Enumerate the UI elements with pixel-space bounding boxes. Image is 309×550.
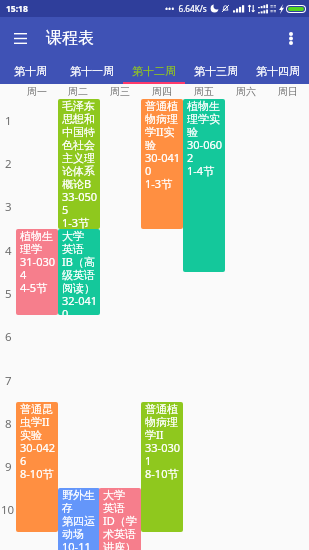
button[interactable]: 普通昆 虫学II 实验 30-042 6 8-10节 <box>16 402 58 532</box>
staticText: 大学 英语 ID（学 术英语 讲座） 32-041 0 10-11节 <box>103 488 141 550</box>
staticText: 第十二周 <box>132 64 176 78</box>
button[interactable]: 大学 英语 IB（高 级英语 阅读） 32-041 0 4-5节 <box>58 229 100 315</box>
staticText: 周四 <box>152 85 172 98</box>
staticText: 周二 <box>68 85 88 98</box>
staticText: 5 <box>5 286 12 302</box>
staticText: 植物生 理学实 验 30-060 2 1-4节 <box>187 99 223 178</box>
button[interactable]: Menu <box>0 18 40 58</box>
staticText: 4 <box>5 243 12 259</box>
button[interactable]: 毛泽东 思想和 中国特 色社会 主义理 论体系 概论B 33-050 5 1-3… <box>58 99 100 229</box>
staticText: 第十四周 <box>256 64 300 78</box>
staticText: 周一 <box>27 85 47 98</box>
staticText: 2 <box>5 156 12 172</box>
staticText: 普通昆 虫学II 实验 30-042 6 8-10节 <box>20 402 56 481</box>
staticText: ••• 6.64K/s <box>165 3 207 14</box>
staticText: 10 <box>1 502 15 518</box>
staticText: 大学 英语 IB（高 级英语 阅读） 32-041 0 4-5节 <box>62 229 98 315</box>
staticText: 周五 <box>194 85 214 98</box>
staticText: 第十一周 <box>70 64 114 78</box>
button[interactable]: 第十四周 <box>247 58 309 84</box>
button[interactable]: 第十周 <box>0 58 61 84</box>
staticText: 周日 <box>278 85 298 98</box>
staticText: 毛泽东 思想和 中国特 色社会 主义理 论体系 概论B 33-050 5 1-3… <box>62 99 98 229</box>
button[interactable]: 普通植 物病理 学II 33-030 1 8-10节 <box>141 402 183 532</box>
staticText: 9 <box>5 459 12 475</box>
staticText: 野外生 存 第四运 动场 10-11节 <box>62 488 100 550</box>
staticText: 第十周 <box>14 64 47 78</box>
staticText: 周六 <box>236 85 256 98</box>
staticText: 普通植 物病理 学II 33-030 1 8-10节 <box>145 402 181 481</box>
staticText: 周三 <box>110 85 130 98</box>
staticText: 1 <box>5 113 12 129</box>
button[interactable]: 植物生 理学实 验 30-060 2 1-4节 <box>183 99 225 272</box>
button[interactable]: 第十一周 <box>61 58 123 84</box>
button[interactable]: 第十三周 <box>185 58 247 84</box>
staticText: 3 <box>5 199 12 215</box>
staticText: 植物生 理学 31-030 4 4-5节 <box>20 229 56 295</box>
staticText: 第十三周 <box>194 64 238 78</box>
button[interactable]: 大学 英语 ID（学 术英语 讲座） 32-041 0 10-11节 <box>99 488 141 550</box>
button[interactable]: 第十二周 <box>123 58 185 84</box>
button[interactable]: 植物生 理学 31-030 4 4-5节 <box>16 229 58 315</box>
staticText: 8 <box>5 416 12 432</box>
staticText: 7 <box>5 373 12 389</box>
button[interactable]: More options <box>273 20 309 56</box>
staticText: 15:18 <box>6 3 28 15</box>
staticText: 6 <box>5 329 12 345</box>
staticText: 课程表 <box>46 28 94 48</box>
button[interactable]: 普通植 物病理 学II实 验 30-041 0 1-3节 <box>141 99 183 229</box>
button[interactable]: 野外生 存 第四运 动场 10-11节 <box>58 488 100 550</box>
staticText: 普通植 物病理 学II实 验 30-041 0 1-3节 <box>145 99 181 191</box>
